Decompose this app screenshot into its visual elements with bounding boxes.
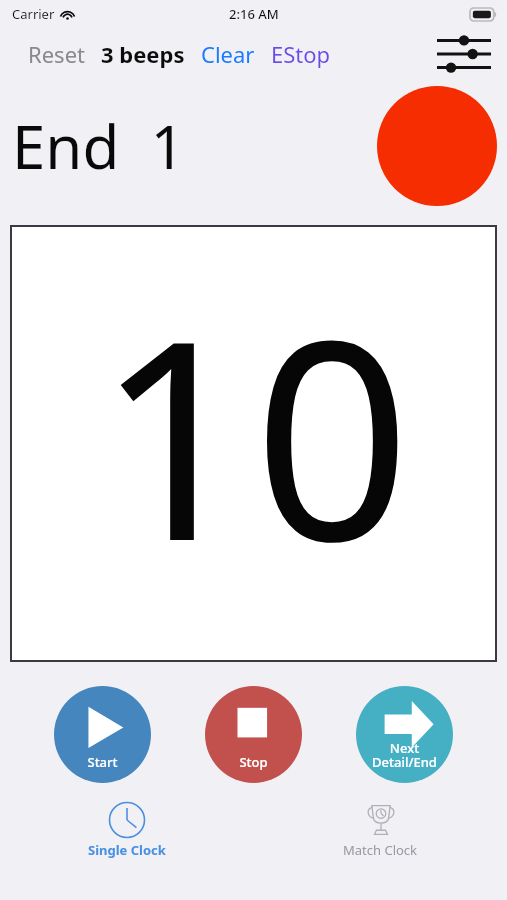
button[interactable]: Clear <box>199 33 257 75</box>
staticText: 2:16 AM <box>229 5 279 23</box>
button[interactable]: 10 <box>10 225 497 662</box>
button[interactable]: Reset <box>26 33 87 75</box>
staticText: Single Clock <box>88 841 166 859</box>
button[interactable]: EStop <box>269 33 333 75</box>
button[interactable]: Start <box>54 686 151 783</box>
staticText: Reset <box>28 39 85 69</box>
button[interactable]: Stop <box>205 686 302 783</box>
staticText: 10 <box>96 246 411 621</box>
staticText: Start <box>87 753 118 771</box>
button[interactable]: Settings <box>433 31 495 77</box>
staticText: Next Detail/End <box>372 739 437 771</box>
staticText: End 1 <box>12 105 185 187</box>
staticText: Carrier <box>12 5 55 23</box>
button[interactable]: 3 beeps <box>99 33 187 75</box>
button[interactable]: Match Clock <box>253 797 507 863</box>
staticText: Match Clock <box>343 841 418 859</box>
staticText: EStop <box>271 39 331 69</box>
button[interactable]: Status indicator <box>377 86 497 206</box>
staticText: Clear <box>201 39 255 69</box>
button[interactable]: Next Detail/End <box>356 686 453 783</box>
button[interactable]: Single Clock <box>0 797 253 863</box>
staticText: Stop <box>239 753 268 771</box>
staticText: 3 beeps <box>101 39 185 69</box>
